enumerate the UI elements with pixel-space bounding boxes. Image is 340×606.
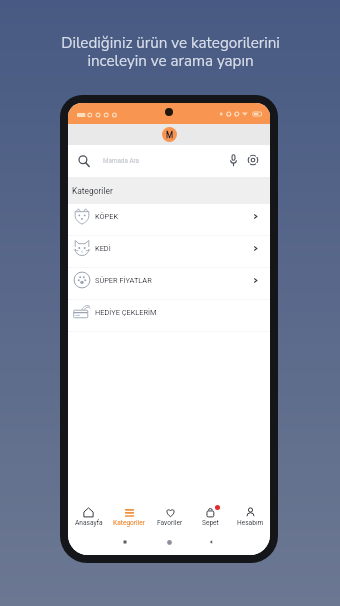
button[interactable]: Hesabım — [230, 505, 270, 527]
button[interactable]: Anasayfa — [68, 505, 109, 527]
button[interactable]: Sesli arama — [229, 154, 238, 167]
staticText: SÜPER FİYATLAR — [95, 276, 152, 285]
staticText: HEDİYE ÇEKLERİM — [95, 308, 157, 317]
button[interactable]: HEDİYE ÇEKLERİM — [68, 300, 270, 332]
button[interactable]: SÜPER FİYATLAR — [68, 268, 270, 300]
staticText: Favoriler — [157, 519, 183, 527]
button[interactable]: Mamada Ara — [68, 145, 270, 177]
staticText: KEDİ — [95, 244, 111, 253]
staticText: Hesabım — [237, 519, 264, 527]
button[interactable]: Back — [208, 539, 214, 545]
staticText: Kategoriler — [72, 186, 113, 196]
button[interactable]: Sepet — [190, 505, 230, 527]
staticText: KÖPEK — [95, 212, 119, 221]
staticText: Kategoriler — [113, 519, 146, 527]
button[interactable]: Görsel arama — [247, 154, 259, 166]
button[interactable]: Favoriler — [150, 505, 190, 527]
button[interactable]: Logo — [162, 127, 177, 142]
button[interactable]: Recents — [122, 539, 128, 545]
staticText: Anasayfa — [75, 519, 103, 527]
button[interactable]: KEDİ — [68, 236, 270, 268]
button[interactable]: KÖPEK — [68, 204, 270, 236]
staticText: Mamada Ara — [103, 157, 139, 164]
staticText: Dilediğiniz ürün ve kategorilerini incel… — [61, 33, 280, 71]
button[interactable]: Home — [166, 539, 173, 546]
button[interactable]: Kategoriler — [109, 505, 150, 527]
staticText: Sepet — [202, 519, 219, 527]
staticText: M — [166, 130, 174, 140]
